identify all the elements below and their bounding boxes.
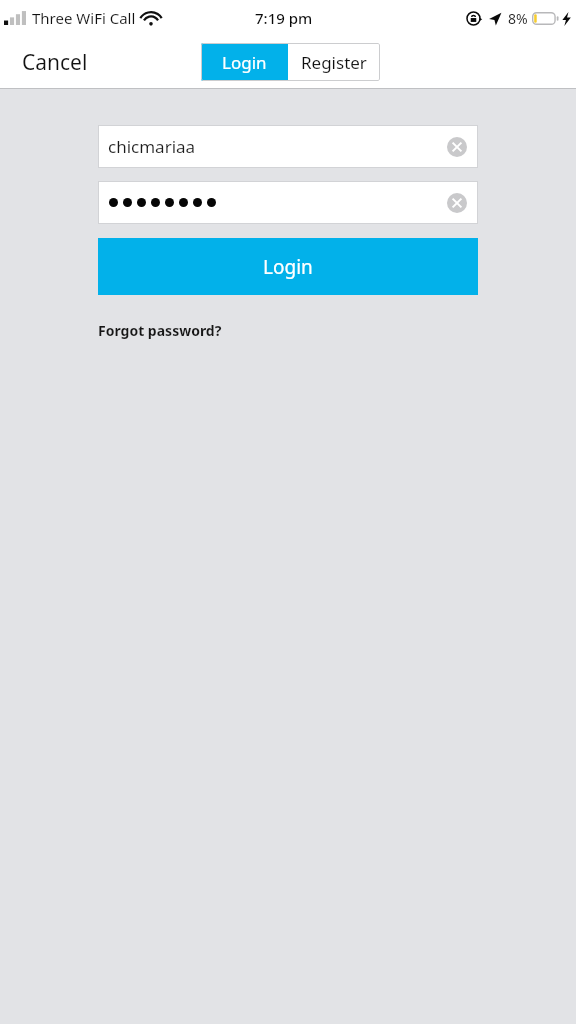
staticText: Login: [222, 51, 267, 74]
staticText: Three WiFi Call: [32, 8, 136, 28]
staticText: Cancel: [22, 48, 88, 77]
button[interactable]: Register: [288, 43, 380, 81]
button[interactable]: chicmariaa: [98, 125, 478, 168]
button[interactable]: Forgot password?: [98, 321, 222, 340]
staticText: 7:19 pm: [255, 8, 313, 28]
button[interactable]: Cancel: [0, 38, 110, 87]
staticText: Register: [301, 51, 367, 74]
button[interactable]: Login: [201, 43, 288, 81]
button[interactable]: Login: [98, 238, 478, 295]
button[interactable]: Clear text: [444, 134, 470, 160]
button[interactable]: Clear text: [98, 181, 478, 224]
staticText: 8%: [508, 9, 528, 28]
staticText: Forgot password?: [98, 321, 222, 340]
other: Rotation lock: [466, 11, 481, 26]
button[interactable]: Clear text: [444, 190, 470, 216]
other: Location: [488, 12, 502, 26]
staticText: Login: [263, 254, 313, 280]
staticText: chicmariaa: [108, 135, 196, 158]
